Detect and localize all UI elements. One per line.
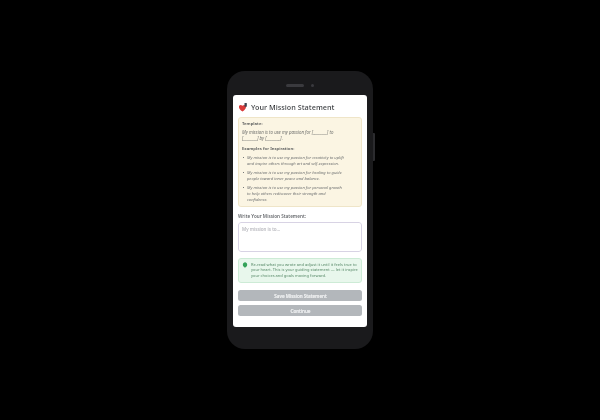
staticText: Write Your Mission Statement: xyxy=(238,213,307,219)
button[interactable]: Save Mission Statement xyxy=(238,290,362,301)
staticText: Continue xyxy=(290,308,311,314)
staticText: Re-read what you wrote and adjust it unt… xyxy=(251,262,358,279)
button[interactable]: Continue xyxy=(238,305,362,316)
other: Tip xyxy=(242,262,248,268)
staticText: My mission is to... xyxy=(242,226,281,232)
staticText: My mission is to use my passion for crea… xyxy=(247,155,344,167)
staticText: My mission is to use my passion for [___… xyxy=(242,129,334,141)
staticText: My mission is to use my passion for heal… xyxy=(247,170,342,182)
staticText: Save Mission Statement xyxy=(274,293,327,299)
staticText: My mission is to use my passion for pers… xyxy=(247,185,342,203)
other: Mission icon xyxy=(238,103,247,112)
staticText: Examples for Inspiration: xyxy=(242,146,295,152)
staticText: Your Mission Statement xyxy=(251,102,335,112)
button[interactable]: My mission is to... xyxy=(238,222,362,252)
staticText: Template: xyxy=(242,121,263,127)
